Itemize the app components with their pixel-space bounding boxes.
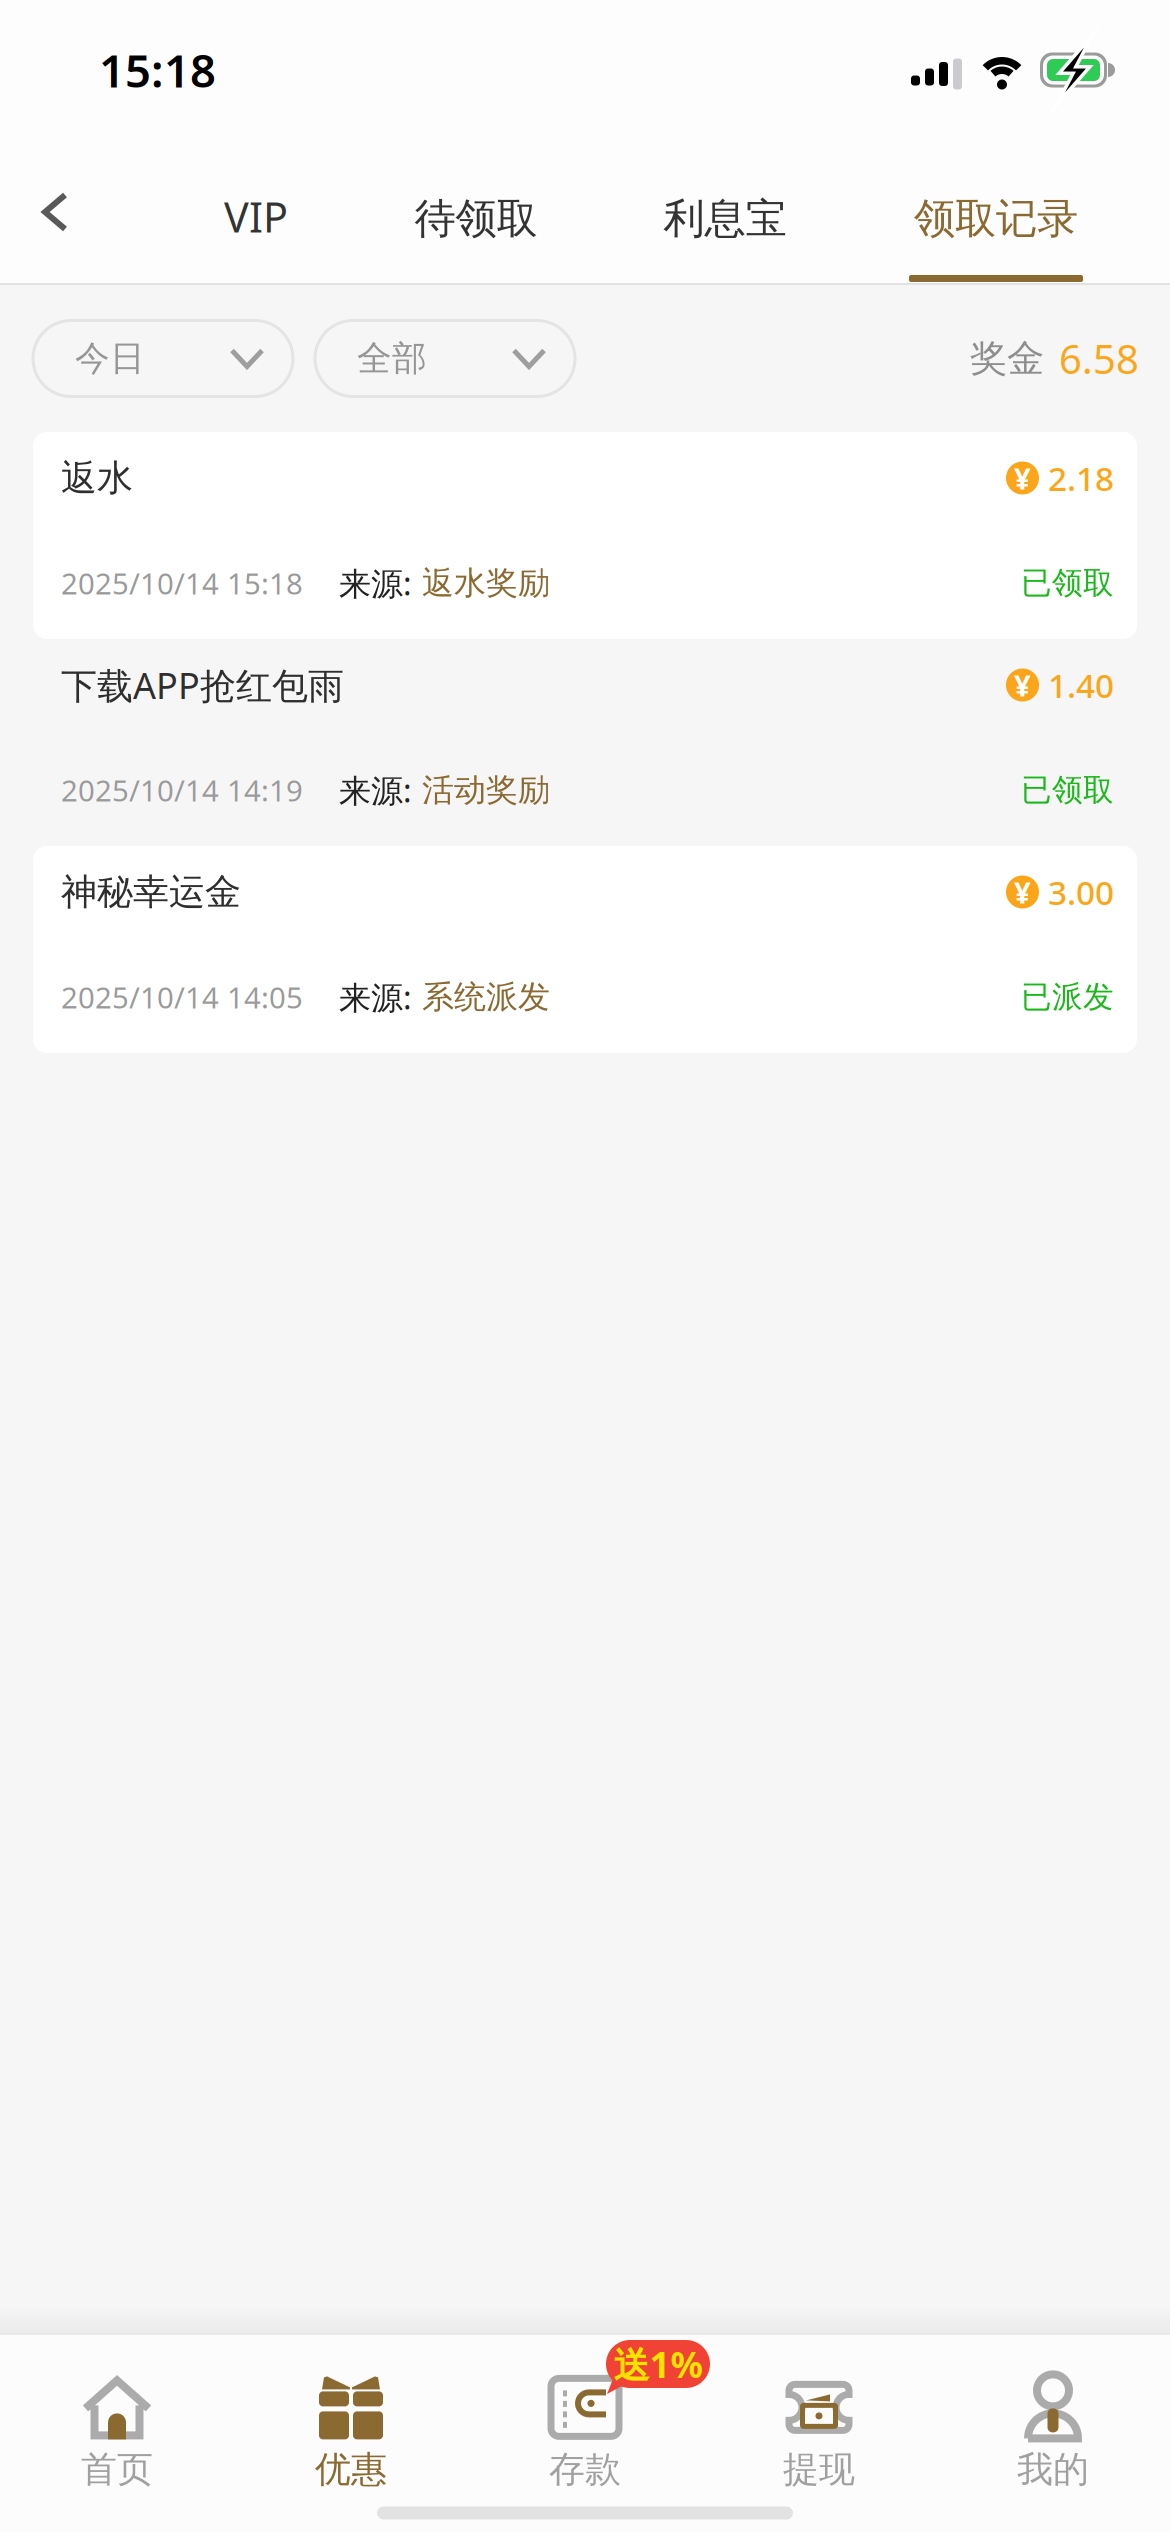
staticText: 我的 — [1017, 2447, 1089, 2492]
staticText: 已派发 — [1021, 978, 1114, 1016]
staticText: 利息宝 — [663, 193, 786, 244]
button[interactable]: 全部 — [315, 320, 575, 396]
staticText: 领取记录 — [914, 193, 1078, 244]
button[interactable]: 存款 — [468, 2335, 702, 2494]
button[interactable]: Back — [0, 130, 150, 283]
staticText: 返水 — [61, 456, 133, 500]
staticText: 1.40 — [1048, 663, 1114, 707]
staticText: 神秘幸运金 — [61, 870, 241, 914]
button[interactable]: 领取记录 — [860, 130, 1132, 283]
staticText: 来源: — [339, 769, 412, 811]
staticText: 2.18 — [1048, 456, 1114, 500]
staticText: 全部 — [357, 337, 427, 380]
staticText: 6.58 — [1059, 332, 1139, 385]
staticText: 首页 — [81, 2447, 153, 2492]
button[interactable]: 首页 — [0, 2335, 234, 2494]
staticText: 提现 — [783, 2447, 855, 2492]
button[interactable]: 返水 — [33, 432, 1137, 639]
button[interactable]: 下载APP抢红包雨 — [33, 639, 1137, 846]
button[interactable]: 利息宝 — [590, 130, 860, 283]
staticText: 送1% — [613, 2340, 702, 2388]
staticText: ¥ — [1014, 872, 1031, 911]
staticText: ¥ — [1014, 665, 1031, 704]
staticText: 3.00 — [1048, 870, 1114, 914]
staticText: 来源: — [339, 562, 412, 604]
staticText: 2025/10/14 15:18 — [61, 563, 303, 602]
button[interactable]: 我的 — [936, 2335, 1170, 2494]
staticText: 存款 — [549, 2447, 621, 2492]
button[interactable]: 提现 — [702, 2335, 936, 2494]
button[interactable]: 待领取 — [362, 130, 590, 283]
staticText: 活动奖励 — [422, 770, 550, 810]
button[interactable]: 优惠 — [234, 2335, 468, 2494]
staticText: 系统派发 — [422, 977, 550, 1017]
staticText: 奖金 — [970, 336, 1044, 381]
staticText: VIP — [224, 189, 288, 244]
staticText: ¥ — [1014, 458, 1031, 497]
staticText: 15:18 — [99, 40, 216, 100]
staticText: 下载APP抢红包雨 — [61, 661, 344, 709]
staticText: 来源: — [339, 976, 412, 1018]
staticText: 已领取 — [1021, 564, 1114, 602]
staticText: 优惠 — [315, 2447, 387, 2492]
staticText: 返水奖励 — [422, 563, 550, 603]
staticText: 2025/10/14 14:19 — [61, 770, 303, 809]
button[interactable]: 今日 — [33, 320, 293, 396]
button[interactable]: VIP — [150, 130, 362, 283]
staticText: 2025/10/14 14:05 — [61, 977, 303, 1016]
button[interactable]: 神秘幸运金 — [33, 846, 1137, 1053]
staticText: 待领取 — [414, 193, 537, 244]
staticText: 已领取 — [1021, 771, 1114, 809]
staticText: 今日 — [75, 337, 145, 380]
